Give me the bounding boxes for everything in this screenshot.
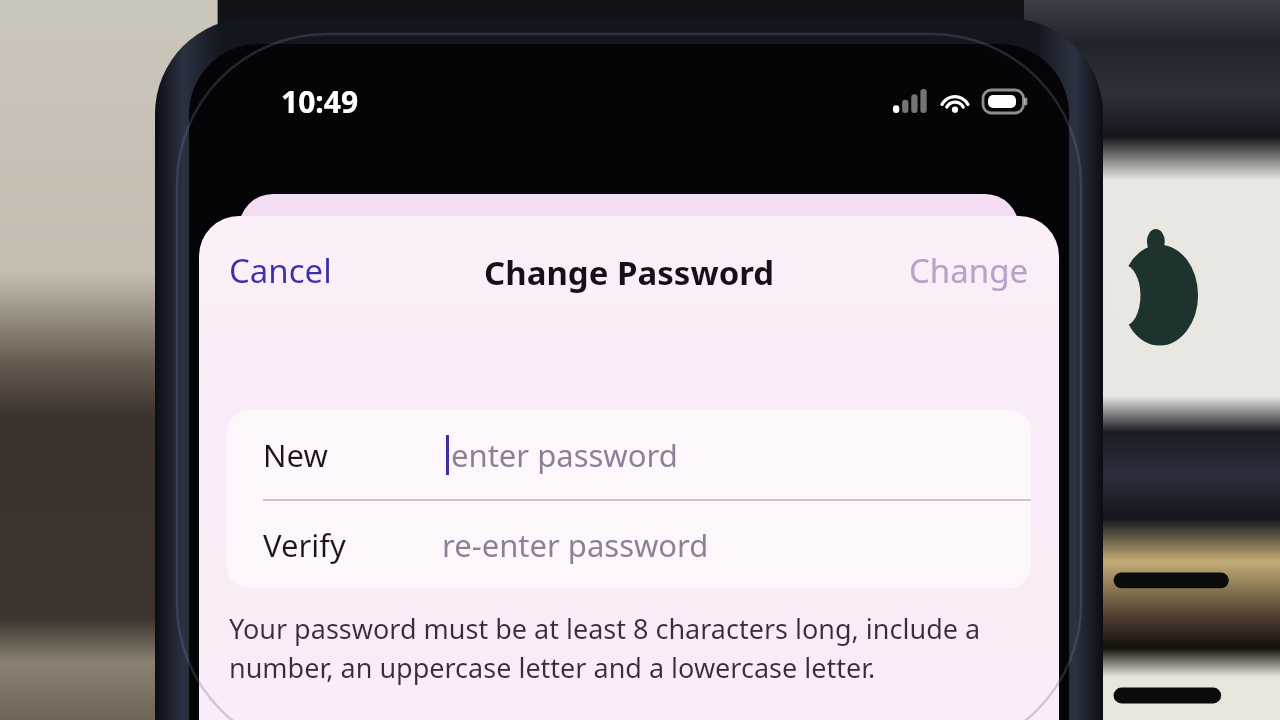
button[interactable]: Cancel — [213, 238, 348, 303]
staticText: 10:49 — [281, 81, 359, 122]
staticText: Your password must be at least 8 charact… — [229, 610, 1029, 686]
staticText: Change Password — [484, 250, 775, 295]
staticText: Change — [909, 248, 1029, 293]
staticText: New — [263, 434, 328, 476]
staticText: enter password — [451, 434, 678, 476]
staticText: Verify — [263, 524, 346, 566]
staticText: Cancel — [229, 248, 332, 293]
staticText: re-enter password — [442, 524, 709, 566]
button[interactable]: New — [227, 410, 1031, 499]
button[interactable]: Verify — [227, 501, 1031, 588]
button[interactable]: Change — [893, 238, 1045, 303]
